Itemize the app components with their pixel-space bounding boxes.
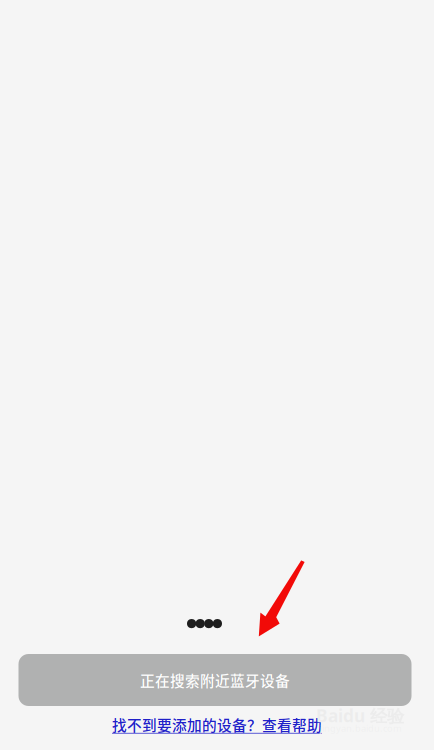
button[interactable]: 正在搜索附近蓝牙设备 — [18, 654, 411, 706]
staticText: 正在搜索附近蓝牙设备 — [140, 669, 290, 691]
staticText: 找不到要添加的设备？查看帮助 — [112, 714, 322, 735]
staticText: Baidu 经验 — [316, 704, 404, 727]
button[interactable]: 找不到要添加的设备？查看帮助 — [112, 714, 322, 735]
staticText: jingyan.baidu.com — [320, 722, 402, 734]
